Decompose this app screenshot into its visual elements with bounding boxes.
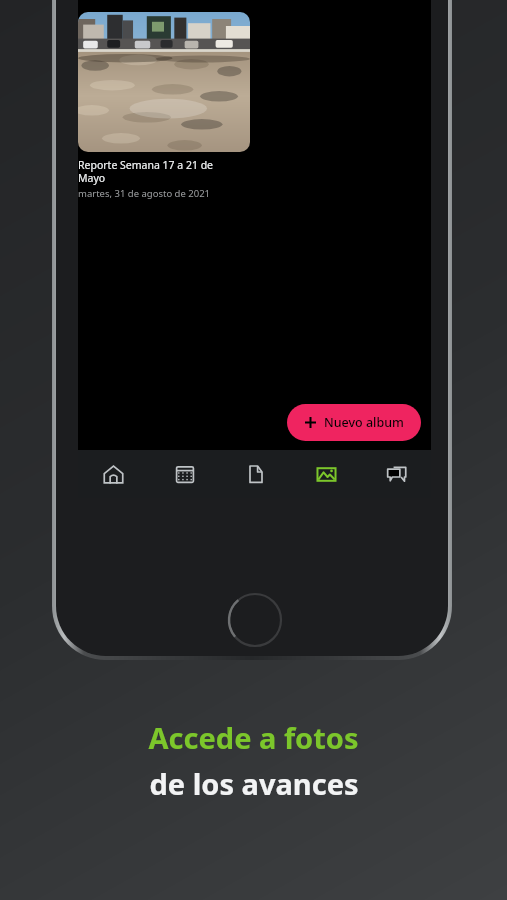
button[interactable] [78, 12, 250, 152]
button[interactable]: Calendar [149, 450, 220, 498]
button[interactable]: Photos [291, 450, 362, 498]
button[interactable]: Home [78, 450, 149, 498]
button[interactable]: Nuevo album [287, 404, 421, 441]
staticText: de los avances [149, 764, 359, 803]
button[interactable]: Documents [220, 450, 291, 498]
staticText: Nuevo album [324, 414, 404, 431]
staticText: Accede a fotos [148, 718, 359, 757]
staticText: martes, 31 de agosto de 2021 [78, 187, 211, 200]
staticText: Reporte Semana 17 a 21 de Mayo [78, 158, 214, 185]
button[interactable]: Messages [362, 450, 431, 498]
